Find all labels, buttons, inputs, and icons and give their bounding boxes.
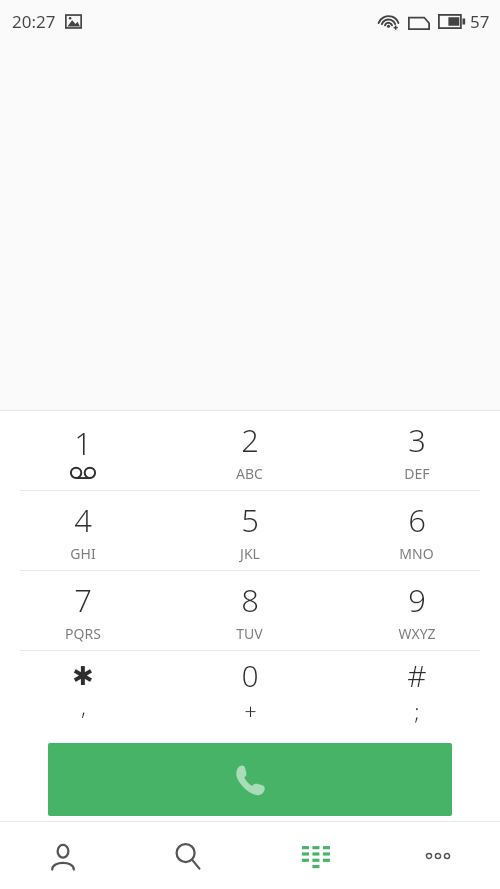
button[interactable]: 8	[166, 571, 333, 650]
staticText: 20:27	[12, 10, 56, 33]
staticText: 1	[74, 422, 92, 464]
button[interactable]: 0	[166, 651, 333, 730]
button[interactable]: Call	[48, 743, 452, 816]
staticText: ABC	[236, 464, 263, 483]
button[interactable]: 1	[0, 411, 166, 490]
button[interactable]: 4	[0, 491, 166, 570]
staticText: 2	[241, 419, 259, 461]
staticText: 7	[74, 579, 92, 621]
button[interactable]: 5	[166, 491, 333, 570]
staticText: ;	[414, 696, 420, 726]
staticText: DEF	[404, 464, 430, 483]
staticText: 0	[241, 655, 259, 696]
button[interactable]: 2	[166, 411, 333, 490]
button[interactable]: Contacts	[0, 822, 125, 889]
staticText: TUV	[236, 624, 263, 643]
staticText: 3	[408, 419, 426, 461]
button[interactable]: Search	[125, 822, 250, 889]
staticText: MNO	[399, 544, 434, 563]
staticText: PQRS	[65, 624, 101, 643]
staticText: 4	[74, 499, 92, 541]
staticText: GHI	[70, 544, 96, 563]
button[interactable]: More options	[375, 822, 500, 889]
staticText: 6	[408, 499, 426, 541]
staticText: 9	[408, 579, 426, 621]
button[interactable]: 3	[333, 411, 500, 490]
staticText: 8	[241, 579, 259, 621]
staticText: JKL	[240, 544, 260, 563]
staticText: ,	[81, 691, 86, 721]
staticText: ✱	[72, 661, 94, 691]
staticText: 5	[241, 499, 259, 541]
button[interactable]: ✱	[0, 651, 166, 730]
button[interactable]: 9	[333, 571, 500, 650]
button[interactable]: 6	[333, 491, 500, 570]
staticText: #	[407, 655, 427, 696]
button[interactable]: 7	[0, 571, 166, 650]
button[interactable]: #	[333, 651, 500, 730]
button[interactable]: Dialpad	[250, 822, 375, 889]
staticText: WXYZ	[398, 624, 436, 643]
staticText: 57	[470, 10, 490, 33]
staticText: +	[244, 696, 257, 726]
